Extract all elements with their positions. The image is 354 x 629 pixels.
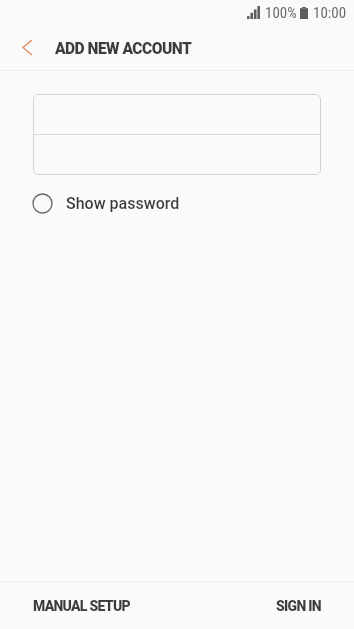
staticText: 100% (265, 4, 297, 22)
staticText: ADD NEW ACCOUNT (55, 40, 192, 58)
staticText: 10:00 (313, 4, 347, 22)
button[interactable]: MANUAL SETUP (0, 582, 177, 629)
staticText: Show password (66, 194, 180, 213)
button[interactable]: Password (33, 136, 321, 175)
staticText: MANUAL SETUP (33, 598, 130, 614)
button[interactable]: Show password (32, 183, 180, 223)
button[interactable]: SIGN IN (177, 582, 354, 629)
staticText: SIGN IN (276, 598, 321, 614)
button[interactable]: Email address (33, 94, 321, 133)
button[interactable]: Back (0, 26, 55, 70)
